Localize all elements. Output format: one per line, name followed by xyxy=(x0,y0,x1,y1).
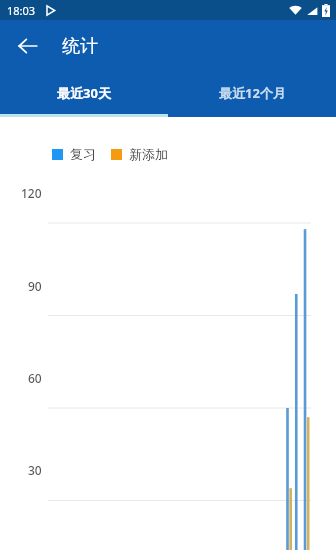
button[interactable]: 最近30天 xyxy=(0,72,168,114)
button[interactable]: Back xyxy=(8,26,48,66)
staticText: 18:03 xyxy=(7,3,36,18)
button[interactable]: 最近12个月 xyxy=(168,72,336,114)
staticText: 90 xyxy=(28,278,42,294)
staticText: 最近30天 xyxy=(57,84,111,102)
staticText: 60 xyxy=(28,370,42,386)
staticText: 新添加 xyxy=(129,146,168,162)
staticText: 120 xyxy=(21,185,42,201)
staticText: 30 xyxy=(28,462,42,478)
staticText: 复习 xyxy=(70,146,96,162)
staticText: 统计 xyxy=(62,35,98,58)
staticText: 最近12个月 xyxy=(219,84,286,102)
